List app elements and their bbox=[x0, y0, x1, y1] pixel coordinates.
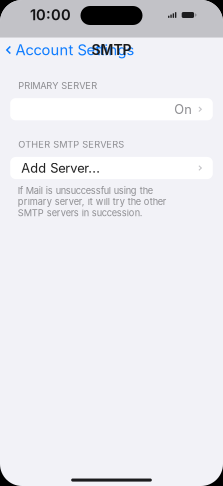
staticText: OTHER SMTP SERVERS bbox=[18, 139, 124, 150]
staticText: 10:00 bbox=[30, 6, 71, 24]
staticText: If Mail is unsuccessful using the primar… bbox=[18, 185, 166, 218]
staticText: PRIMARY SERVER bbox=[18, 80, 97, 91]
staticText: SMTP bbox=[91, 41, 131, 58]
staticText: On bbox=[174, 101, 192, 117]
button[interactable]: On bbox=[10, 98, 213, 120]
staticText: Add Server... bbox=[21, 160, 100, 176]
button[interactable]: Add Server... bbox=[10, 157, 213, 179]
button[interactable]: Account Settings bbox=[0, 37, 138, 62]
staticText: Account Settings bbox=[15, 41, 134, 59]
